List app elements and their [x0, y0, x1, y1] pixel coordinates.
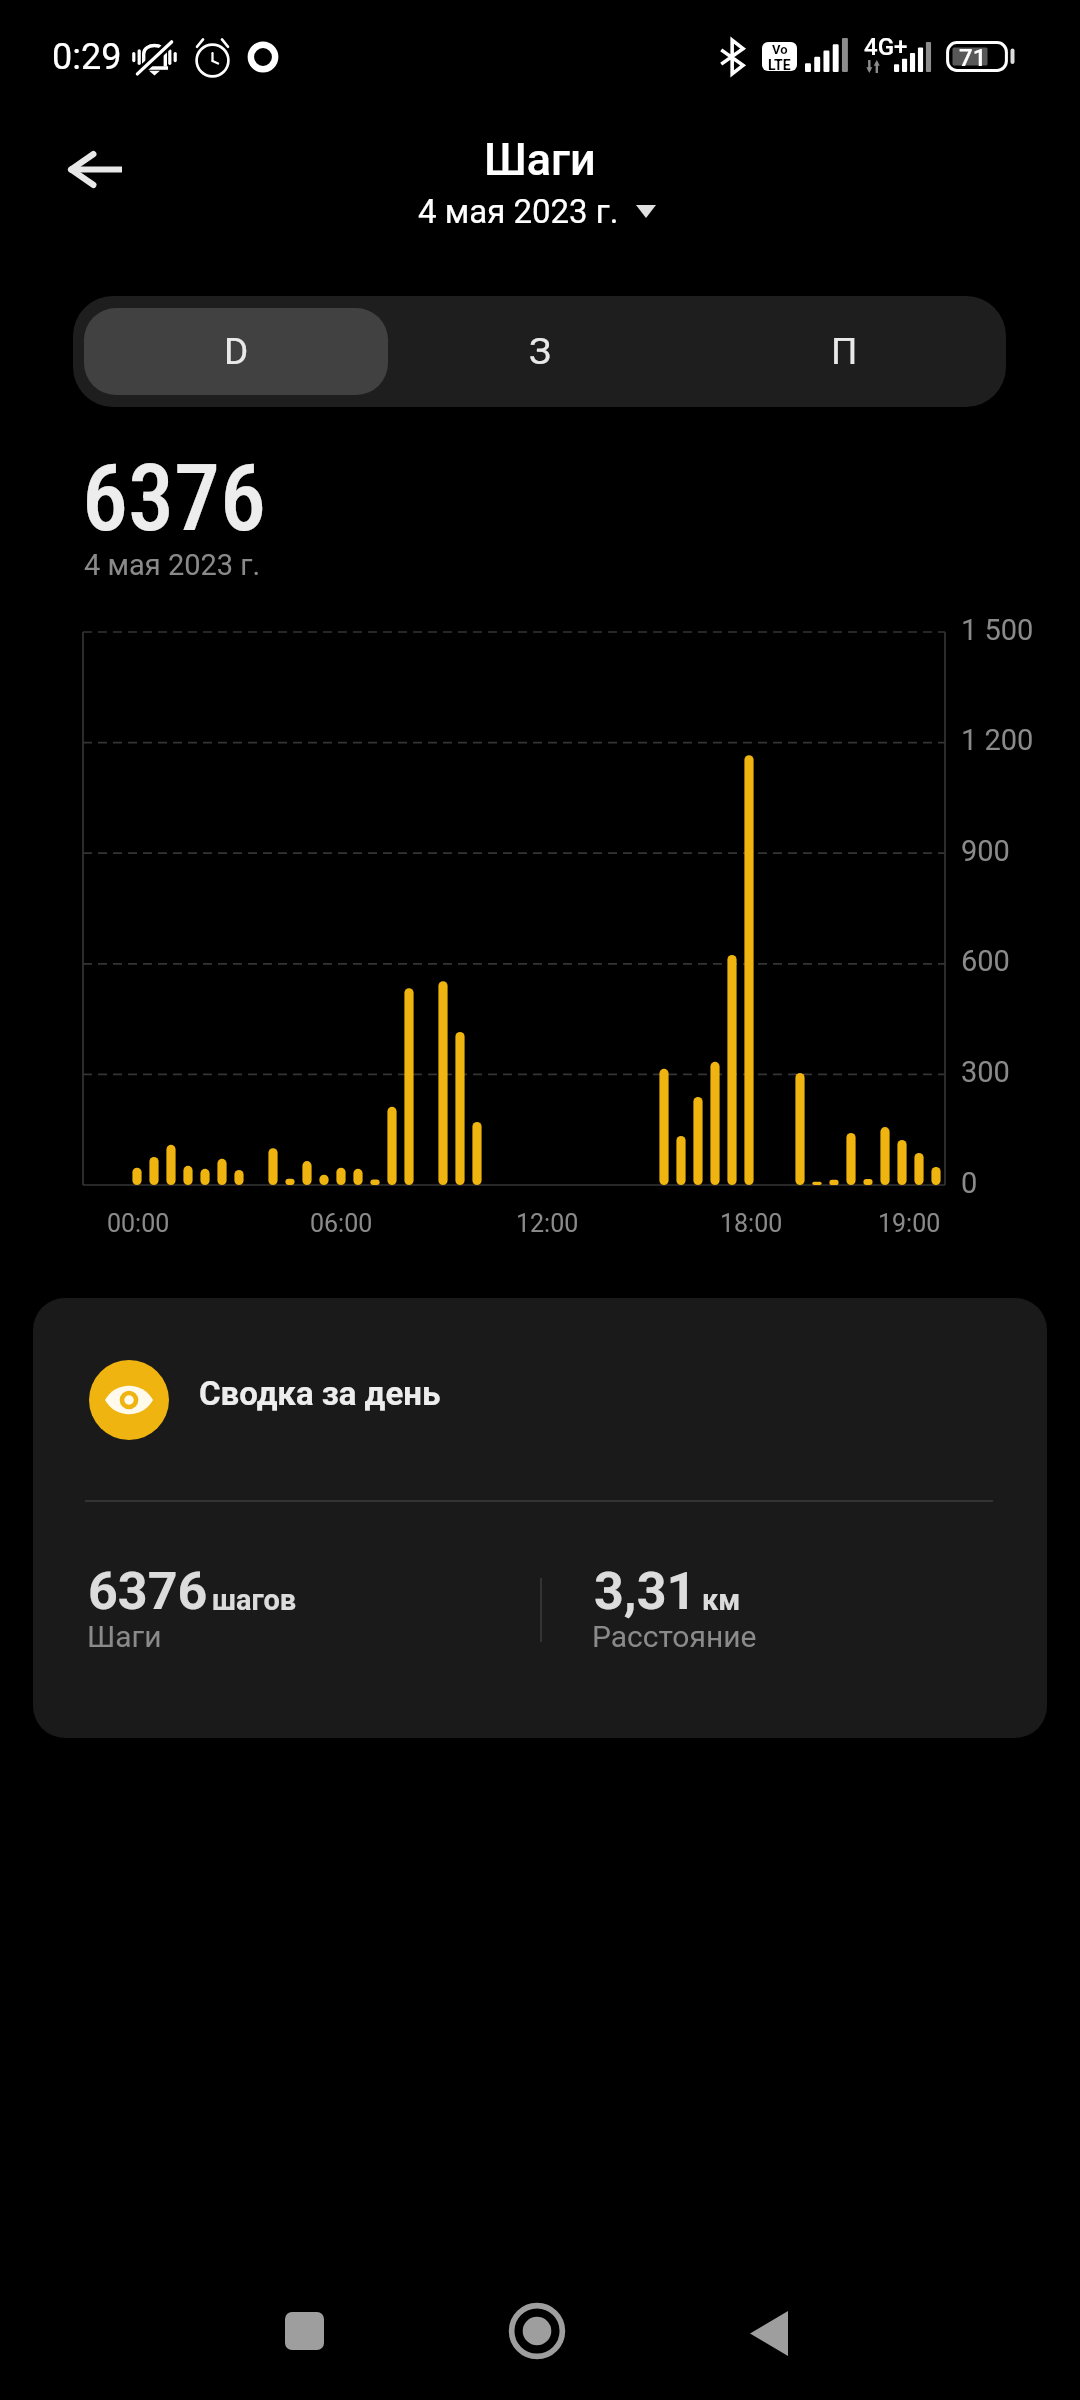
staticText: Сводка за день [199, 1374, 441, 1413]
button[interactable]: Сводка за день [33, 1298, 1047, 1738]
staticText: П [831, 330, 858, 373]
staticText: 900 [961, 834, 1010, 868]
staticText: 600 [961, 944, 1010, 978]
button[interactable]: Back [714, 2278, 824, 2388]
button[interactable]: Home [482, 2276, 592, 2386]
button[interactable]: П [692, 308, 996, 395]
staticText: 300 [961, 1055, 1010, 1089]
staticText: км [702, 1583, 741, 1617]
staticText: 4 мая 2023 г. [418, 192, 619, 231]
staticText: 12:00 [516, 1209, 579, 1238]
button[interactable]: З [388, 308, 692, 395]
staticText: 0:29 [52, 36, 122, 78]
staticText: LTE [768, 57, 791, 71]
staticText: 1 500 [961, 613, 1034, 647]
staticText: 18:00 [720, 1209, 783, 1238]
staticText: 0 [961, 1166, 978, 1200]
button[interactable]: Back [50, 124, 140, 214]
staticText: 3,31 [594, 1561, 697, 1622]
staticText: 06:00 [310, 1209, 373, 1238]
button[interactable]: 4 мая 2023 г. [412, 188, 662, 235]
staticText: 19:00 [878, 1209, 941, 1238]
staticText: 4 мая 2023 г. [84, 548, 261, 582]
staticText: 71 [959, 44, 987, 72]
staticText: 00:00 [107, 1209, 170, 1238]
staticText: З [529, 330, 551, 373]
staticText: 6376 [88, 1561, 208, 1622]
staticText: Шаги [484, 133, 596, 186]
staticText: 4G+ [864, 33, 908, 61]
staticText: 6376 [82, 445, 266, 553]
staticText: D [224, 330, 249, 373]
button[interactable]: Recents [249, 2276, 359, 2386]
staticText: Vo [772, 42, 788, 57]
staticText: Расстояние [592, 1619, 757, 1654]
staticText: Шаги [87, 1619, 162, 1654]
button[interactable]: D [84, 308, 388, 395]
staticText: 1 200 [961, 723, 1034, 757]
staticText: шагов [212, 1583, 297, 1617]
